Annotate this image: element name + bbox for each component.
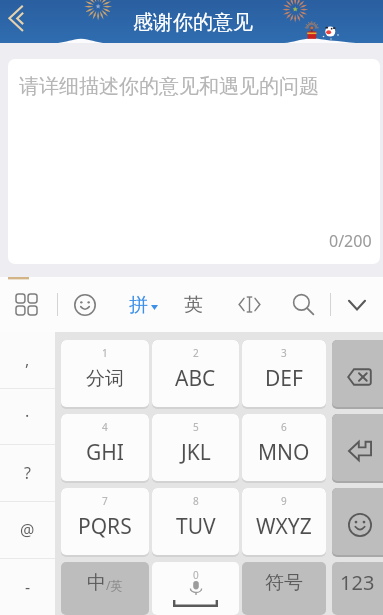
button[interactable]: backspace bbox=[332, 340, 383, 407]
button[interactable]: 中 bbox=[61, 562, 149, 615]
staticText: 0 bbox=[193, 568, 199, 582]
staticText: 6 bbox=[281, 420, 287, 434]
staticText: 5 bbox=[193, 420, 199, 434]
staticText: JKL bbox=[181, 438, 211, 467]
button[interactable]: 7 bbox=[61, 488, 149, 555]
button[interactable]: - bbox=[0, 558, 55, 615]
staticText: ? bbox=[24, 462, 31, 484]
button[interactable]: 1 bbox=[61, 340, 149, 407]
staticText: 感谢你的意见 bbox=[133, 10, 253, 35]
staticText: 分词 bbox=[86, 367, 124, 391]
staticText: ABC bbox=[175, 364, 216, 393]
button[interactable]: @ bbox=[0, 501, 55, 558]
button[interactable]: Hide keyboard bbox=[331, 277, 383, 332]
staticText: · bbox=[25, 405, 30, 427]
staticText: PQRS bbox=[78, 512, 132, 541]
button[interactable]: emoji bbox=[332, 488, 383, 555]
staticText: MNO bbox=[258, 438, 310, 467]
button[interactable]: enter bbox=[332, 414, 383, 481]
button[interactable]: 123 bbox=[332, 562, 383, 615]
button[interactable]: Space, voice input bbox=[152, 562, 239, 615]
staticText: 3 bbox=[281, 346, 287, 360]
staticText: 1 bbox=[102, 346, 108, 360]
staticText: 4 bbox=[102, 420, 108, 434]
button[interactable]: 9 bbox=[242, 488, 326, 555]
button[interactable]: 英 bbox=[173, 277, 214, 332]
staticText: @ bbox=[20, 519, 35, 541]
button[interactable]: 请详细描述你的意见和遇见的问题 bbox=[8, 59, 380, 264]
button[interactable]: Back bbox=[0, 0, 34, 43]
button[interactable]: 5 bbox=[152, 414, 239, 481]
button[interactable]: 符号 bbox=[242, 562, 326, 615]
staticText: 8 bbox=[193, 494, 199, 508]
button[interactable]: 2 bbox=[152, 340, 239, 407]
button[interactable]: Keyboard layout bbox=[0, 277, 53, 332]
button[interactable]: Emoji bbox=[59, 277, 111, 332]
button[interactable]: , bbox=[0, 332, 55, 388]
button[interactable]: ? bbox=[0, 444, 55, 501]
staticText: - bbox=[25, 576, 31, 598]
button[interactable]: 4 bbox=[61, 414, 149, 481]
staticText: 拼 bbox=[129, 293, 148, 317]
staticText: 请详细描述你的意见和遇见的问题 bbox=[19, 74, 319, 99]
staticText: GHI bbox=[86, 438, 124, 467]
staticText: DEF bbox=[265, 364, 303, 393]
staticText: 中 bbox=[87, 571, 106, 595]
button[interactable]: 6 bbox=[242, 414, 326, 481]
button[interactable]: Move cursor bbox=[221, 277, 277, 332]
staticText: 符号 bbox=[265, 571, 303, 595]
staticText: 2 bbox=[193, 346, 199, 360]
button[interactable]: · bbox=[0, 388, 55, 444]
staticText: 0/200 bbox=[329, 230, 372, 252]
staticText: /英 bbox=[106, 577, 123, 593]
staticText: , bbox=[25, 349, 30, 371]
staticText: 7 bbox=[102, 494, 108, 508]
button[interactable]: 8 bbox=[152, 488, 239, 555]
staticText: 123 bbox=[340, 569, 375, 596]
staticText: TUV bbox=[176, 512, 216, 541]
staticText: WXYZ bbox=[256, 512, 312, 541]
button[interactable]: Search bbox=[277, 277, 329, 332]
staticText: 9 bbox=[281, 494, 287, 508]
button[interactable]: 拼 bbox=[113, 277, 173, 332]
staticText: 英 bbox=[184, 293, 203, 317]
button[interactable]: 3 bbox=[242, 340, 326, 407]
